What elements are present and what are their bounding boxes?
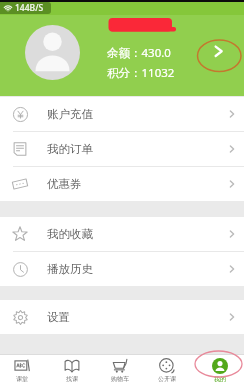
staticText: 账户充值 xyxy=(47,107,93,121)
button[interactable]: 购物车 xyxy=(96,354,144,382)
staticText: 设置 xyxy=(47,310,70,324)
staticText: 播放历史 xyxy=(47,262,93,276)
button[interactable]: 我的订单 xyxy=(0,132,244,166)
button[interactable]: 我的 xyxy=(196,354,244,382)
button[interactable]: 播放历史 xyxy=(0,252,244,286)
staticText: 我的订单 xyxy=(47,142,93,156)
staticText: 公开课 xyxy=(158,375,176,382)
staticText: 积分：11032 xyxy=(107,65,175,81)
staticText: 我的 xyxy=(214,375,226,382)
button[interactable]: 公开课 xyxy=(143,354,191,382)
button[interactable]: 优惠券 xyxy=(0,167,244,201)
button[interactable]: Profile avatar xyxy=(25,25,80,80)
staticText: 余额：430.0 xyxy=(107,45,171,61)
staticText: 找课 xyxy=(66,375,78,382)
staticText: 144B/S xyxy=(15,2,44,14)
staticText: 我的收藏 xyxy=(47,227,93,241)
button[interactable]: 我的收藏 xyxy=(0,217,244,251)
button[interactable]: Account details xyxy=(203,37,231,65)
staticText: 购物车 xyxy=(111,375,129,382)
button[interactable]: 课堂 xyxy=(0,354,46,382)
button[interactable]: 账户充值 xyxy=(0,97,244,131)
button[interactable]: 设置 xyxy=(0,300,244,334)
button[interactable]: 找课 xyxy=(48,354,96,382)
staticText: 课堂 xyxy=(16,375,28,382)
staticText: 优惠券 xyxy=(47,177,82,191)
